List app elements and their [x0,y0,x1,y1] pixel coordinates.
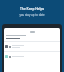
staticText: The Keep Helps [20,7,44,11]
other: Open note [5,45,8,48]
button[interactable]: Open note [4,52,60,61]
staticText: you stay up to date [19,13,45,17]
button[interactable]: Open note [4,42,60,51]
other: Open note [5,55,8,58]
